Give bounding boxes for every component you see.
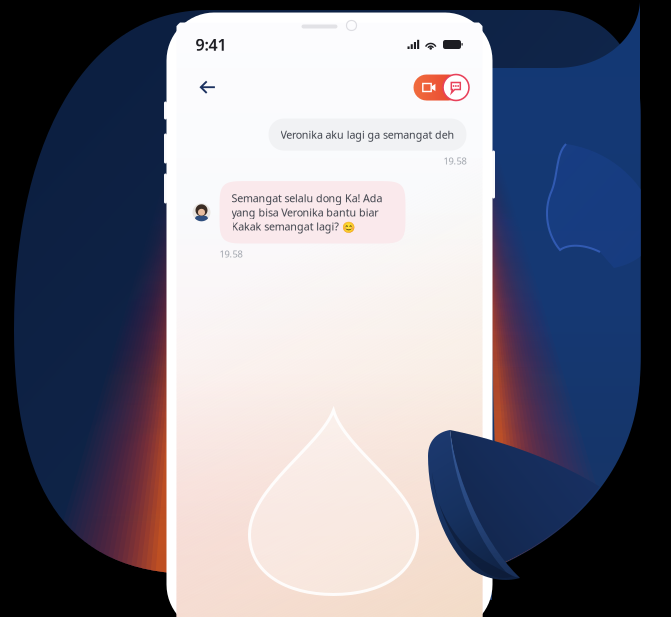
staticText: 19.58 <box>219 248 242 260</box>
button[interactable]: Back <box>190 72 224 102</box>
staticText: Semangat selalu dong Ka! Ada yang bisa V… <box>231 191 383 234</box>
staticText: 19.58 <box>443 155 466 167</box>
button[interactable]: Switch to chat <box>414 74 468 101</box>
staticText: 9:41 <box>195 34 226 55</box>
staticText: Veronika aku lagi ga semangat deh <box>280 127 454 142</box>
